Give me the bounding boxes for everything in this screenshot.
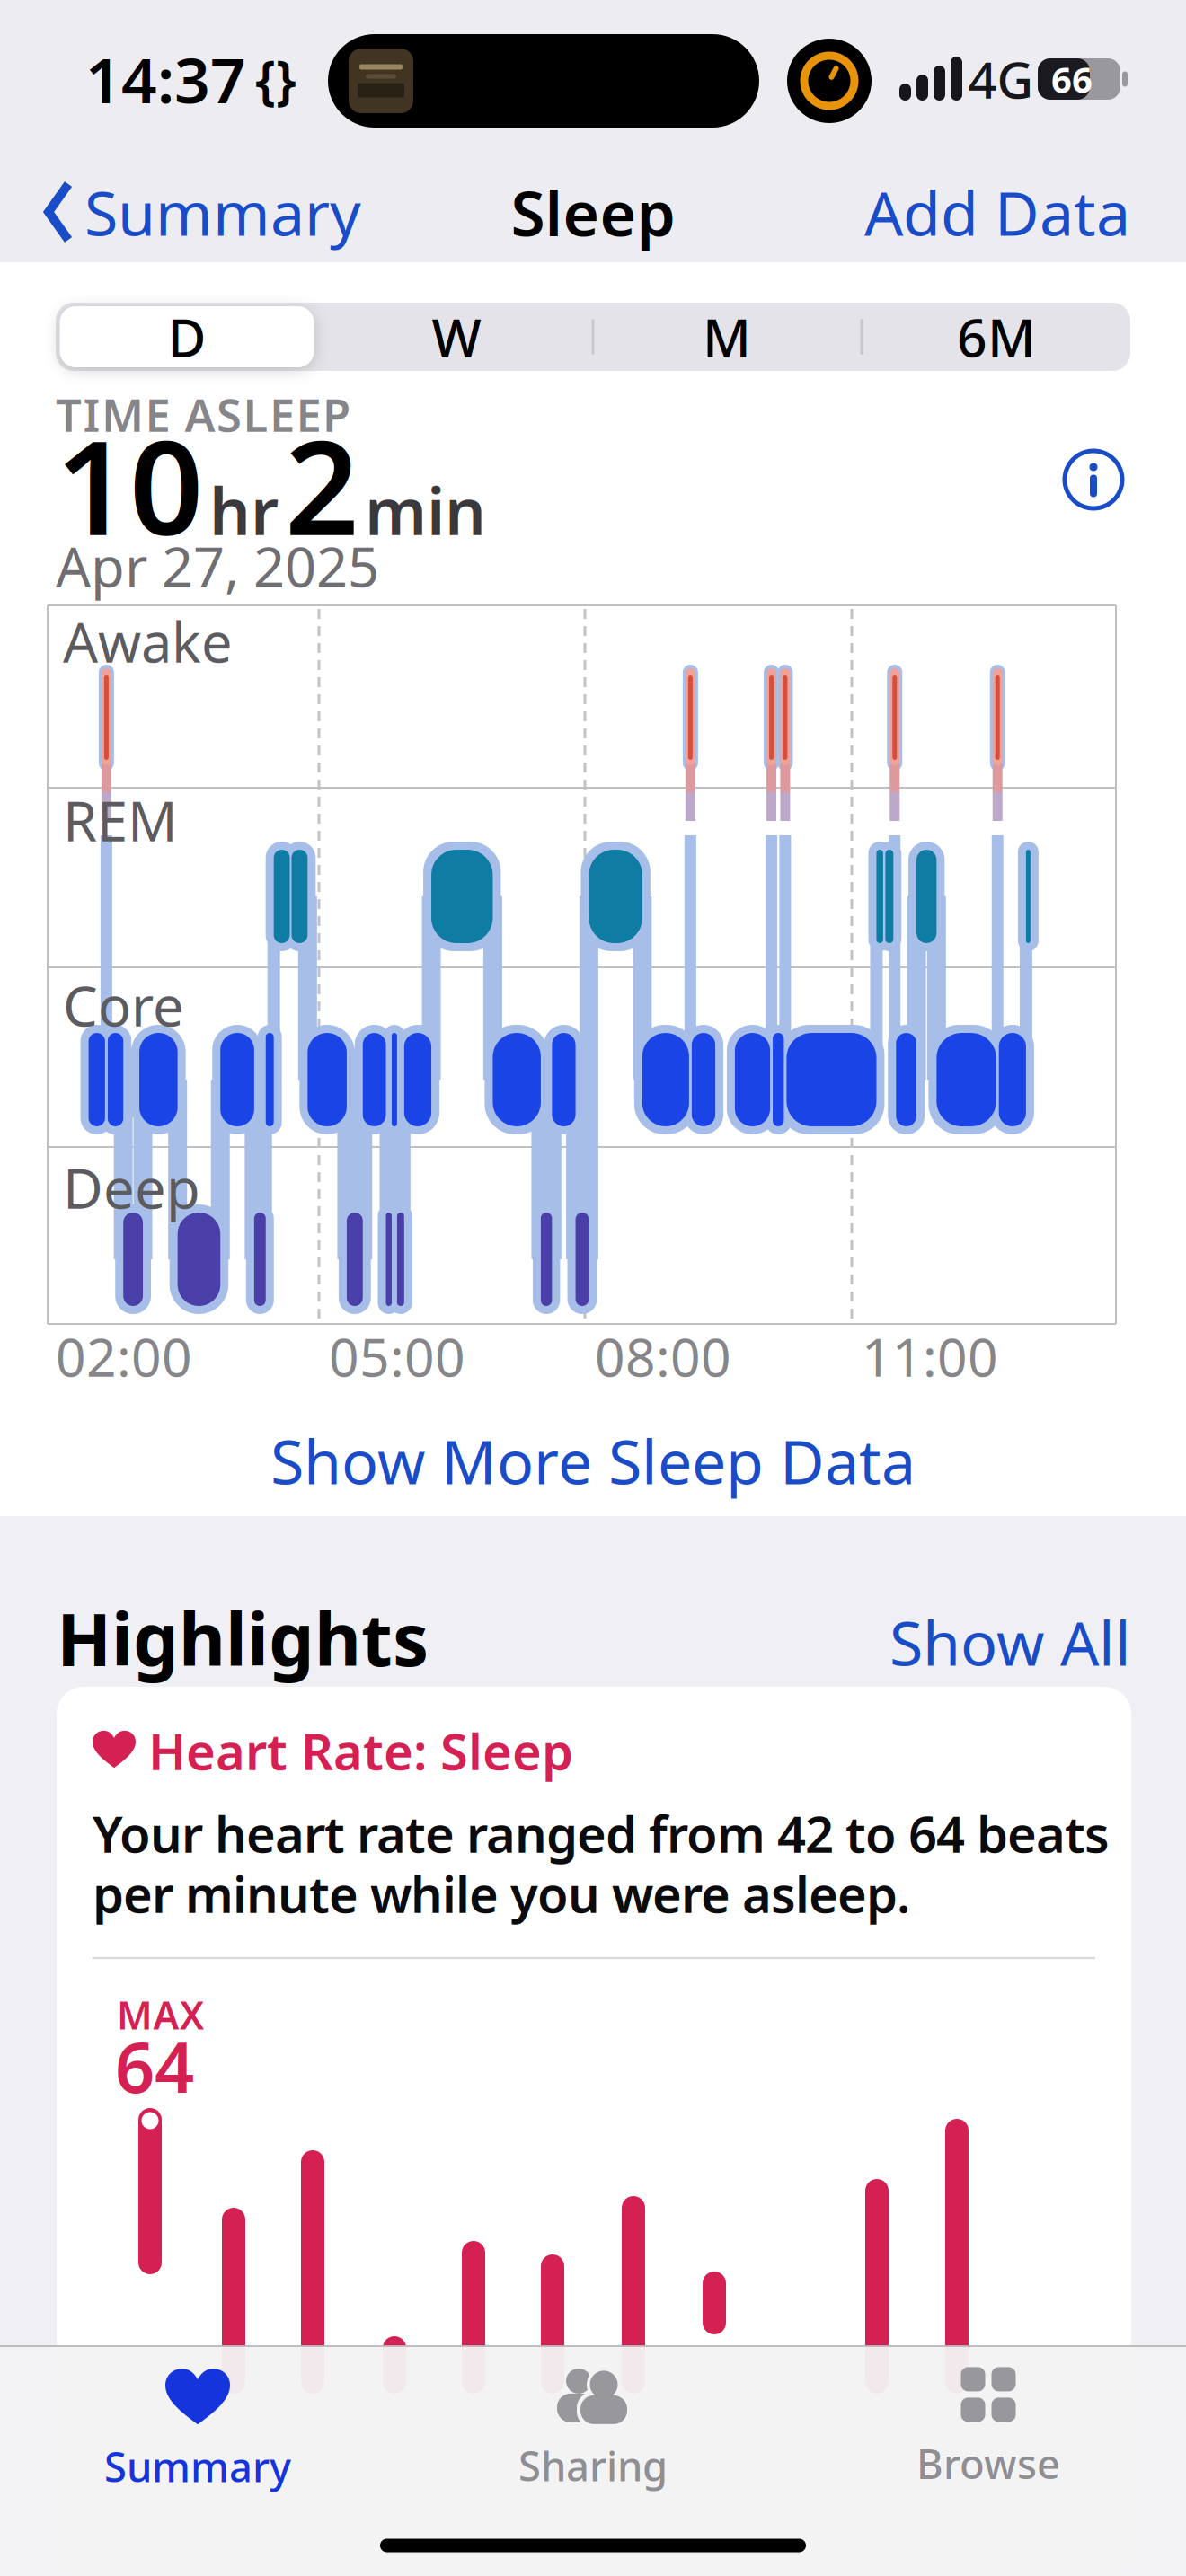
- staticText: per minute while you were asleep.: [93, 1860, 910, 1927]
- button[interactable]: About Time Asleep: [1061, 447, 1126, 512]
- staticText: Summary: [84, 171, 361, 252]
- staticText: 66: [1051, 55, 1093, 103]
- button[interactable]: W: [326, 303, 587, 371]
- staticText: Deep: [63, 1151, 200, 1224]
- staticText: Show More Sleep Data: [270, 1420, 916, 1501]
- staticText: Add Data: [864, 171, 1130, 252]
- staticText: M: [703, 302, 751, 372]
- button[interactable]: Summary: [36, 2359, 359, 2502]
- button[interactable]: M: [597, 303, 857, 371]
- staticText: min: [365, 467, 486, 553]
- staticText: 02:00: [56, 1321, 192, 1391]
- button[interactable]: Summary: [47, 171, 361, 252]
- staticText: Your heart rate ranged from 42 to 64 bea…: [93, 1800, 1110, 1867]
- staticText: 6M: [957, 302, 1036, 372]
- staticText: MAX: [117, 1989, 204, 2040]
- staticText: 14:37: [85, 38, 246, 120]
- button[interactable]: Show All: [889, 1601, 1131, 1682]
- button[interactable]: Browse: [827, 2357, 1150, 2501]
- staticText: Awake: [63, 605, 233, 678]
- button[interactable]: Sharing: [431, 2357, 755, 2501]
- staticText: TIME ASLEEP: [56, 384, 350, 444]
- staticText: Highlights: [57, 1591, 429, 1686]
- staticText: 05:00: [329, 1321, 465, 1391]
- staticText: 08:00: [595, 1321, 731, 1391]
- staticText: 11:00: [862, 1321, 998, 1391]
- staticText: Sharing: [518, 2438, 668, 2493]
- staticText: 2: [285, 399, 358, 571]
- button[interactable]: Heart Rate: Sleep highlight: [57, 1687, 1131, 2576]
- staticText: Heart Rate: Sleep: [148, 1717, 573, 1784]
- staticText: Sleep: [511, 171, 675, 253]
- button[interactable]: Show More Sleep Data: [270, 1420, 916, 1501]
- staticText: 4G: [968, 46, 1034, 112]
- staticText: Summary: [104, 2439, 291, 2493]
- staticText: {}: [255, 44, 296, 114]
- staticText: Show All: [889, 1601, 1131, 1682]
- button[interactable]: D: [60, 306, 314, 367]
- staticText: Core: [63, 969, 184, 1042]
- staticText: W: [432, 302, 481, 372]
- staticText: D: [168, 302, 206, 372]
- staticText: Apr 27, 2025: [56, 529, 379, 602]
- staticText: Browse: [916, 2436, 1060, 2490]
- staticText: hr: [209, 467, 279, 553]
- button[interactable]: 6M: [866, 303, 1127, 371]
- staticText: 64: [115, 2020, 194, 2112]
- staticText: 10: [56, 399, 203, 571]
- button[interactable]: Add Data: [864, 171, 1130, 252]
- staticText: REM: [63, 783, 178, 857]
